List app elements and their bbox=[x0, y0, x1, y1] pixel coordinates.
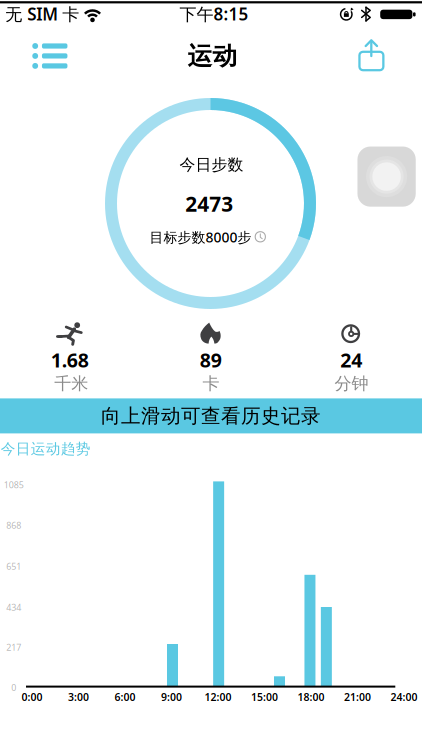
staticText: 无 SIM 卡 bbox=[5, 2, 79, 26]
staticText: 2473 bbox=[185, 189, 233, 218]
staticText: 24 bbox=[340, 347, 362, 373]
button[interactable]: 目标步数说明 bbox=[250, 227, 270, 247]
staticText: 千米 bbox=[54, 373, 88, 394]
staticText: 6:00 bbox=[114, 690, 135, 704]
staticText: 24:00 bbox=[390, 690, 417, 704]
staticText: 651 bbox=[6, 560, 21, 572]
staticText: 21:00 bbox=[344, 690, 371, 704]
button[interactable]: 辅助触控 bbox=[357, 146, 416, 207]
staticText: 89 bbox=[200, 347, 222, 373]
button[interactable]: 分享 bbox=[351, 37, 391, 73]
staticText: 0:00 bbox=[21, 690, 42, 704]
staticText: 今日运动趋势 bbox=[1, 440, 91, 458]
staticText: 15:00 bbox=[251, 690, 278, 704]
staticText: 9:00 bbox=[161, 690, 182, 704]
staticText: 18:00 bbox=[297, 690, 324, 704]
staticText: 今日步数 bbox=[180, 155, 244, 175]
button[interactable]: 向上滑动可查看历史记录 bbox=[0, 398, 422, 433]
staticText: 0 bbox=[11, 681, 16, 694]
staticText: 目标步数8000步 bbox=[149, 227, 251, 246]
staticText: 868 bbox=[6, 519, 21, 531]
staticText: 217 bbox=[6, 641, 21, 653]
staticText: 向上滑动可查看历史记录 bbox=[101, 404, 321, 428]
staticText: 1085 bbox=[4, 479, 24, 491]
staticText: 分钟 bbox=[334, 373, 368, 394]
staticText: 12:00 bbox=[204, 690, 231, 704]
staticText: 1.68 bbox=[51, 347, 89, 373]
staticText: 3:00 bbox=[68, 690, 89, 704]
staticText: 434 bbox=[6, 601, 21, 613]
staticText: 运动 bbox=[188, 41, 238, 71]
staticText: 下午8:15 bbox=[179, 2, 248, 26]
staticText: 卡 bbox=[202, 373, 219, 394]
button[interactable]: 菜单 bbox=[29, 39, 71, 72]
